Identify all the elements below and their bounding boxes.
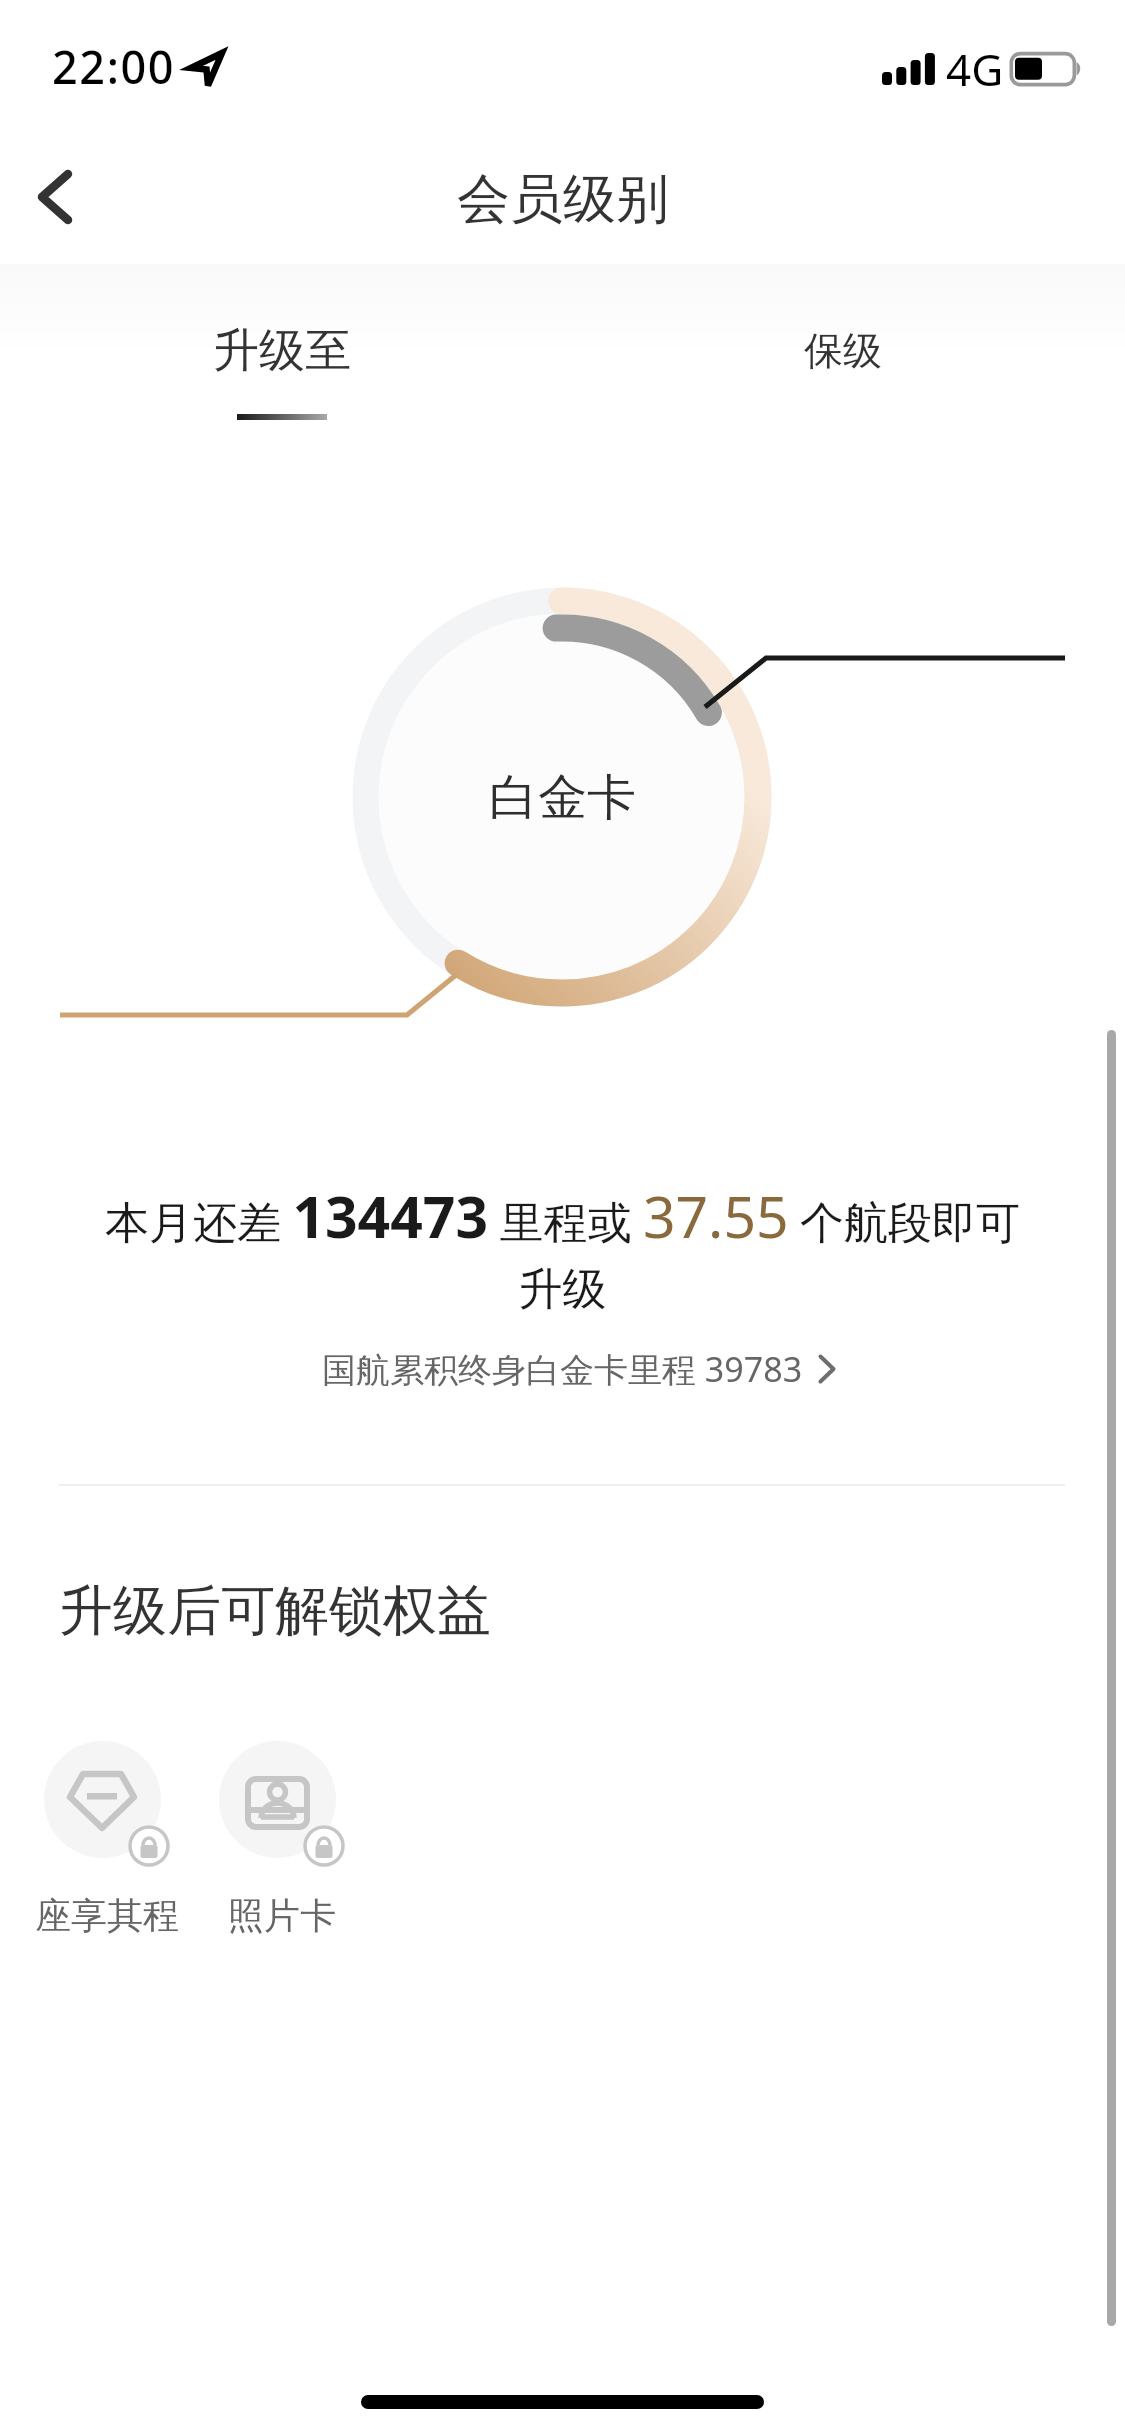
staticText: 升级后可解锁权益 <box>59 1577 491 1645</box>
staticText: 照片卡 <box>179 1893 385 1938</box>
staticText: 白金卡 <box>489 767 636 829</box>
button[interactable]: 国航累积终身白金卡里程 39783 <box>322 1346 835 1392</box>
staticText: 国航累积终身白金卡里程 39783 <box>322 1346 803 1392</box>
button[interactable]: 座享其程 <box>4 1741 210 1951</box>
staticText: 22:00 <box>52 36 176 97</box>
staticText: 本月还差 134473 里程或 37.55 个航段即可升级 <box>92 1177 1033 1317</box>
staticText: 会员级别 <box>457 166 669 233</box>
staticText: 升级至 <box>213 322 351 380</box>
staticText: 4G <box>946 39 1004 99</box>
button[interactable]: 照片卡 <box>179 1741 385 1951</box>
button[interactable]: 升级至 <box>160 264 404 434</box>
button[interactable]: 保级 <box>721 264 965 434</box>
staticText: 保级 <box>804 326 882 375</box>
staticText: 座享其程 <box>4 1893 210 1938</box>
button[interactable]: Back <box>0 142 110 252</box>
